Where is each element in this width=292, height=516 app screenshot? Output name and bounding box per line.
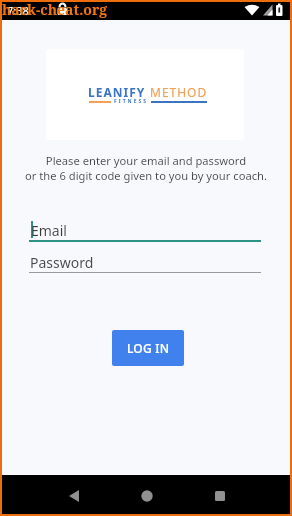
staticText: 7:38 [7, 3, 29, 18]
staticText: hack-cheat.org [2, 0, 108, 19]
button[interactable]: Email [29, 218, 261, 242]
staticText: FITNESS [114, 98, 148, 105]
staticText: LEANIFY [88, 84, 146, 100]
staticText: Please enter your email and password or … [0, 153, 292, 183]
button[interactable]: LOG IN [112, 330, 184, 366]
staticText: LOG IN [127, 340, 170, 356]
staticText: Password [30, 253, 94, 272]
button[interactable] [53, 475, 94, 516]
button[interactable] [126, 475, 167, 516]
staticText: METHOD [150, 84, 208, 100]
button[interactable]: Password [29, 252, 261, 273]
button[interactable] [199, 475, 240, 516]
staticText: Email [31, 221, 67, 240]
